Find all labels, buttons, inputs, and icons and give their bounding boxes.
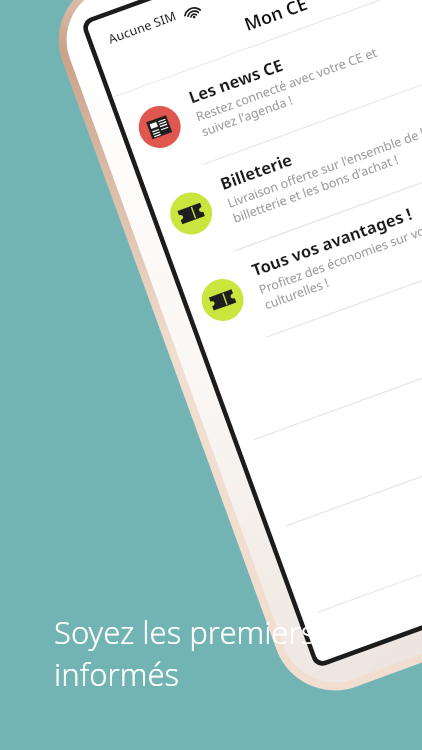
- staticText: Livraison offerte sur l'ensemble de la b…: [225, 110, 422, 226]
- staticText: Les news CE: [185, 53, 286, 107]
- staticText: Tous vos avantages !: [248, 202, 415, 280]
- button[interactable]: Billeterie: [145, 62, 422, 272]
- staticText: Profitez des économies sur vos sorties c…: [257, 197, 422, 312]
- button[interactable]: Tous vos avantages: [176, 149, 422, 359]
- staticText: Restez connecté avec votre CE et suivez …: [194, 24, 422, 139]
- button[interactable]: Les news CE: [113, 0, 422, 186]
- staticText: Mon CE: [241, 0, 311, 37]
- staticText: Billeterie: [217, 148, 295, 194]
- staticText: Aucune SIM: [106, 7, 179, 48]
- staticText: Soyez les premiers informés: [54, 611, 316, 695]
